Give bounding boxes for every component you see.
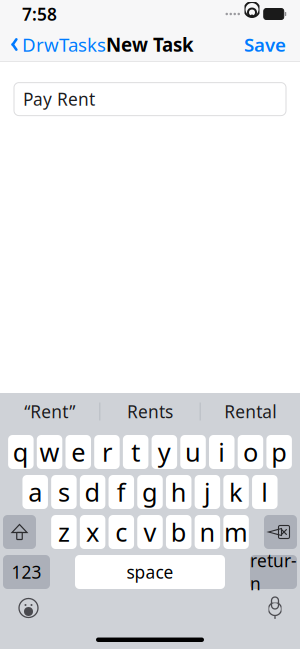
staticText: Rents: [127, 400, 173, 423]
staticText: DrwTasks: [22, 32, 106, 57]
button[interactable]: Rents: [100, 393, 200, 430]
button[interactable]: h: [166, 475, 191, 509]
button[interactable]: space: [75, 555, 225, 589]
staticText: t: [131, 435, 140, 469]
staticText: return: [250, 549, 297, 595]
button[interactable]: 123: [3, 555, 50, 589]
button[interactable]: z: [51, 515, 77, 549]
button[interactable]: d: [80, 475, 105, 509]
staticText: p: [271, 435, 287, 469]
staticText: Save: [244, 32, 286, 57]
button[interactable]: “Rent”: [0, 393, 99, 430]
button[interactable]: x: [80, 515, 105, 549]
button[interactable]: Dictate: [268, 597, 282, 619]
staticText: x: [86, 515, 99, 549]
button[interactable]: Rental: [201, 393, 300, 430]
staticText: h: [171, 475, 187, 509]
button[interactable]: g: [137, 475, 163, 509]
button[interactable]: k: [223, 475, 249, 509]
button[interactable]: j: [195, 475, 220, 509]
staticText: b: [171, 515, 187, 549]
button[interactable]: t: [123, 435, 148, 469]
button[interactable]: Pay Rent: [0, 62, 300, 116]
button[interactable]: e: [65, 435, 91, 469]
staticText: space: [126, 560, 173, 583]
button[interactable]: q: [8, 435, 34, 469]
staticText: 7:58: [22, 2, 57, 25]
staticText: m: [224, 515, 248, 549]
button[interactable]: m: [223, 515, 249, 549]
button[interactable]: f: [108, 475, 134, 509]
button[interactable]: o: [238, 435, 263, 469]
staticText: w: [39, 435, 59, 469]
staticText: i: [218, 435, 225, 469]
staticText: v: [143, 515, 156, 549]
button[interactable]: s: [51, 475, 77, 509]
button[interactable]: return: [250, 555, 297, 589]
staticText: Rental: [224, 400, 276, 423]
button[interactable]: l: [252, 475, 277, 509]
staticText: e: [71, 435, 85, 469]
button[interactable]: u: [180, 435, 206, 469]
staticText: r: [102, 435, 112, 469]
staticText: 123: [11, 560, 41, 583]
button[interactable]: c: [109, 515, 134, 549]
button[interactable]: DrwTasks: [0, 26, 106, 63]
staticText: f: [117, 475, 126, 509]
button[interactable]: w: [37, 435, 62, 469]
staticText: a: [28, 475, 42, 509]
staticText: d: [85, 475, 101, 509]
button[interactable]: i: [209, 435, 234, 469]
staticText: o: [243, 435, 258, 469]
button[interactable]: Save: [244, 26, 300, 63]
staticText: “Rent”: [24, 400, 75, 423]
staticText: y: [158, 435, 171, 469]
button[interactable]: p: [266, 435, 292, 469]
staticText: l: [261, 475, 268, 509]
button[interactable]: n: [195, 515, 220, 549]
staticText: New Task: [106, 32, 194, 57]
staticText: g: [142, 475, 158, 509]
button[interactable]: Emoji: [18, 597, 39, 618]
staticText: c: [115, 515, 127, 549]
staticText: q: [13, 435, 29, 469]
staticText: Pay Rent: [23, 88, 95, 111]
button[interactable]: a: [22, 475, 48, 509]
button[interactable]: b: [166, 515, 191, 549]
button[interactable]: v: [137, 515, 163, 549]
staticText: n: [199, 515, 215, 549]
staticText: s: [58, 475, 70, 509]
button[interactable]: y: [152, 435, 177, 469]
button[interactable]: r: [94, 435, 120, 469]
button[interactable]: Shift: [3, 515, 36, 549]
staticText: u: [185, 435, 201, 469]
button[interactable]: Delete: [264, 515, 297, 549]
staticText: z: [58, 515, 70, 549]
staticText: k: [229, 475, 243, 509]
staticText: j: [204, 475, 211, 509]
